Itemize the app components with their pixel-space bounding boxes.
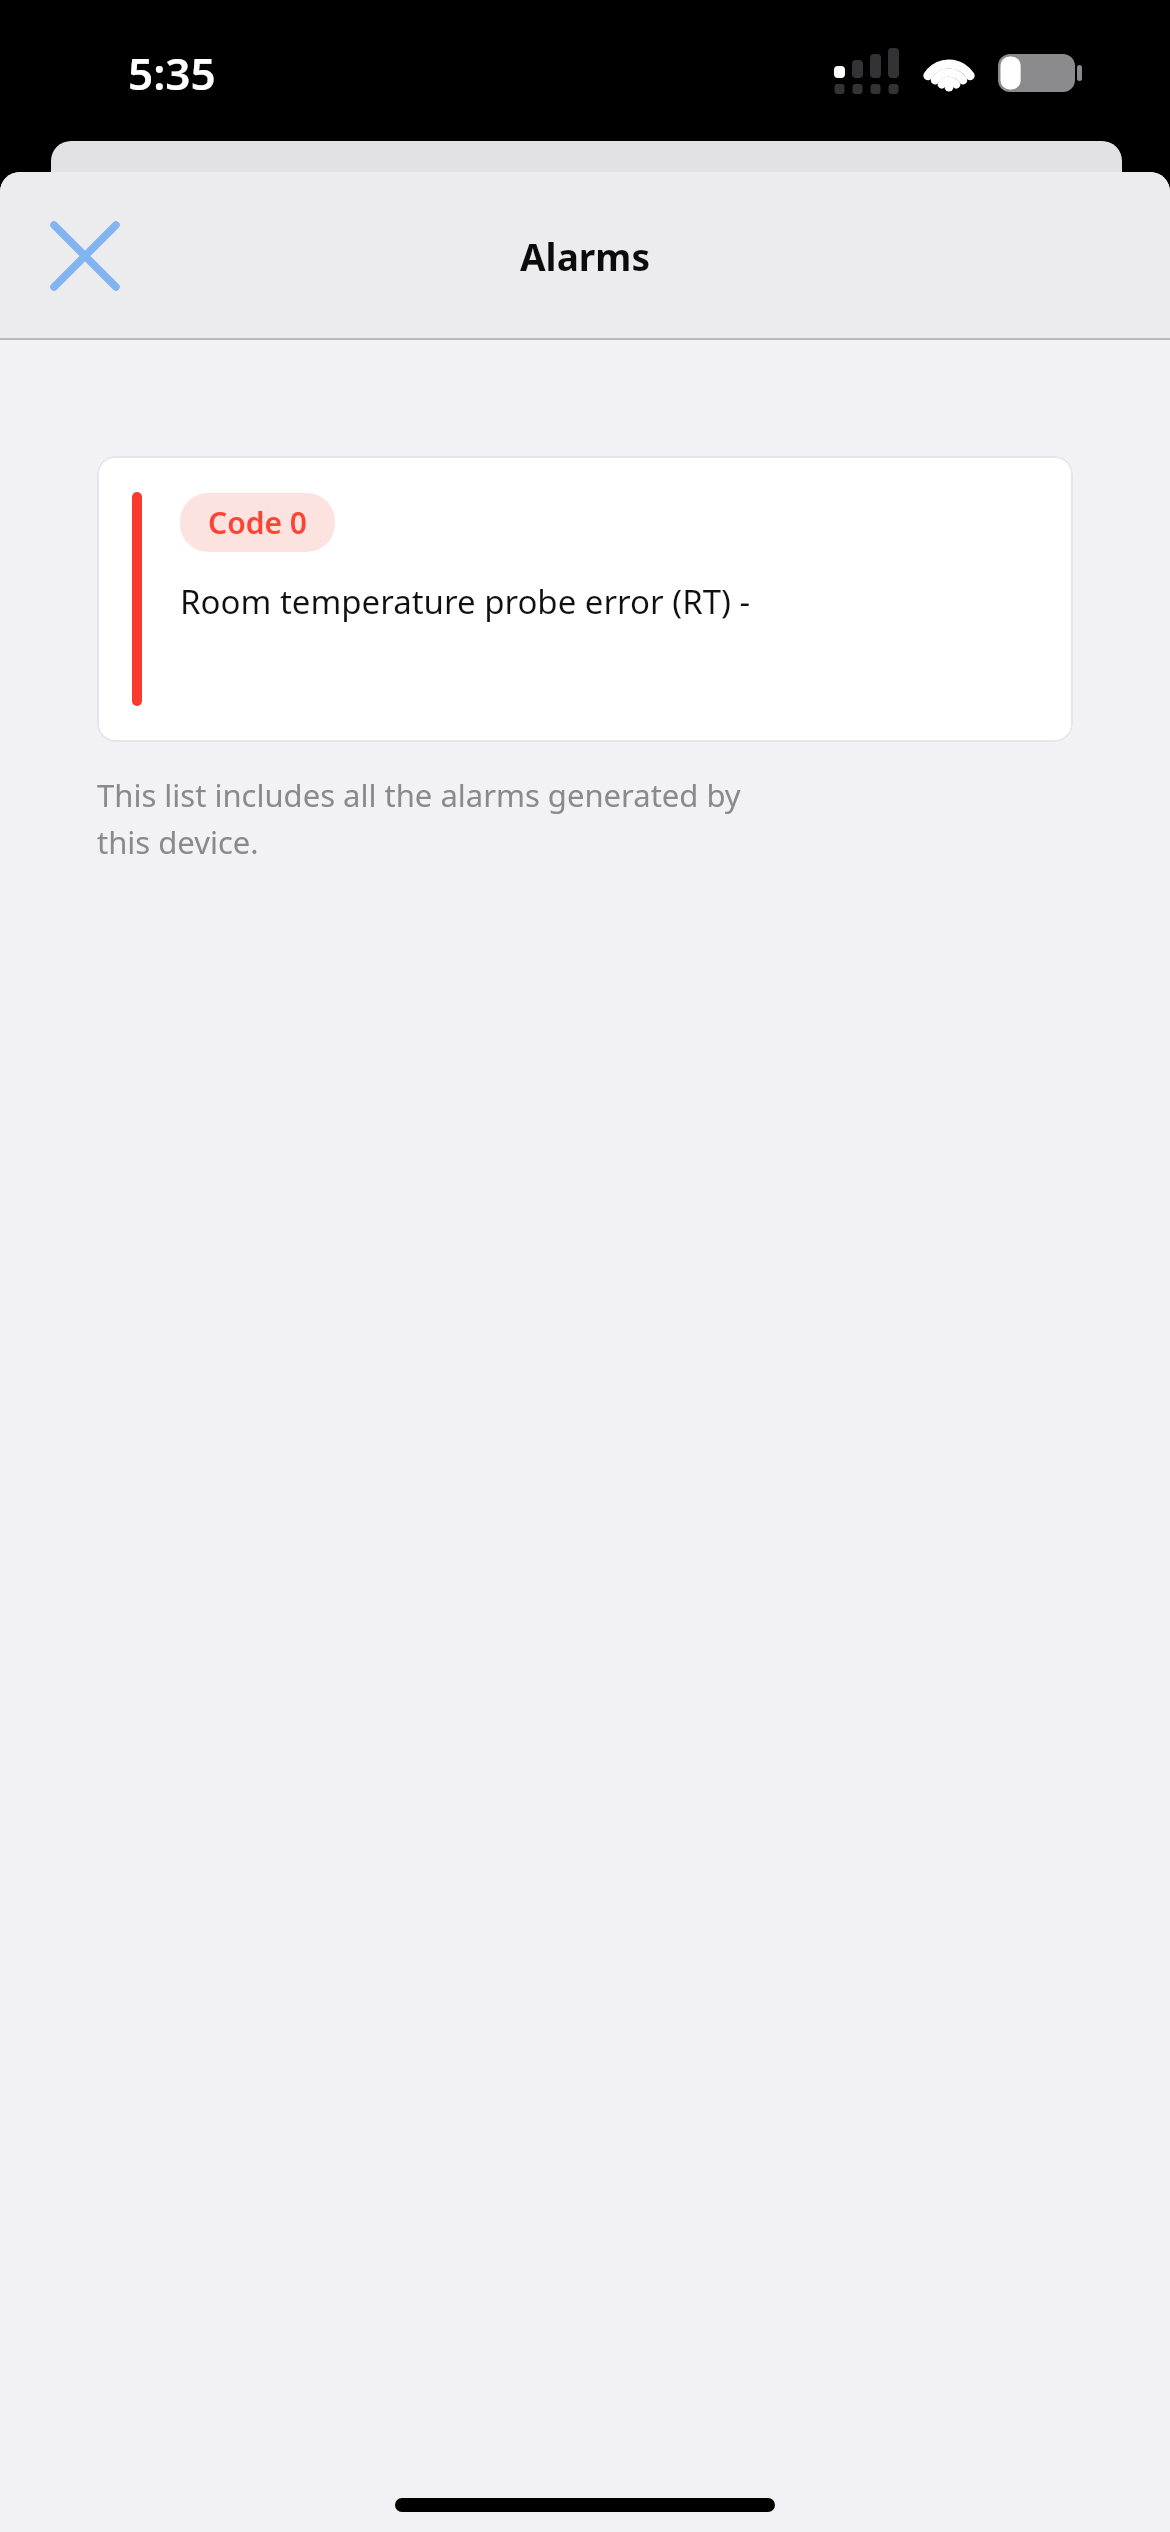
staticText: 5:35 <box>128 43 216 103</box>
staticText: Alarms <box>520 231 650 281</box>
staticText: Code 0 <box>208 502 307 543</box>
button[interactable]: Code 0 <box>97 456 1073 742</box>
staticText: This list includes all the alarms genera… <box>97 774 741 863</box>
staticText: Room temperature probe error (RT) - <box>180 579 751 624</box>
button[interactable]: Close <box>26 197 144 315</box>
